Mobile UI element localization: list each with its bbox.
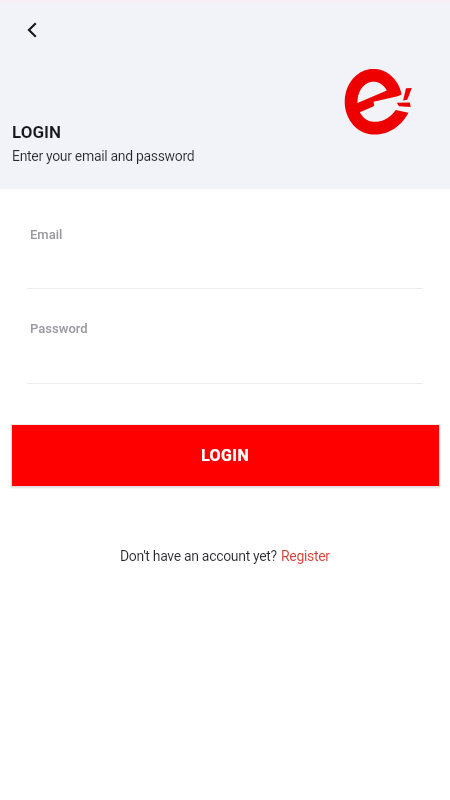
button[interactable]: Password bbox=[0, 313, 450, 390]
staticText: Don't have an account yet? bbox=[120, 548, 281, 564]
staticText: Enter your email and password bbox=[12, 148, 195, 164]
button[interactable]: LOGIN bbox=[12, 425, 439, 486]
staticText: Password bbox=[30, 321, 88, 336]
button[interactable]: Register bbox=[281, 548, 330, 564]
button[interactable]: Email bbox=[0, 219, 450, 295]
staticText: Register bbox=[281, 548, 330, 564]
staticText: Email bbox=[30, 227, 63, 242]
button[interactable]: Back bbox=[10, 8, 54, 52]
staticText: LOGIN bbox=[201, 446, 250, 465]
staticText: LOGIN bbox=[12, 122, 61, 142]
